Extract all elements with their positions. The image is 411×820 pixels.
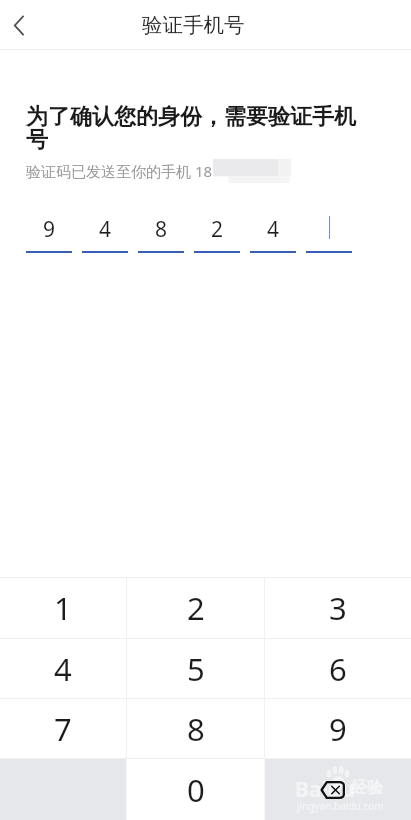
staticText: 验证手机号 [142,12,245,38]
staticText: Baidu [295,775,355,804]
staticText: 5 [187,648,205,690]
staticText: 为了确认您的身份，需要验证手机号 [26,103,368,154]
staticText: 验证码已发送至你的手机 18 [26,161,213,181]
staticText: 7 [54,708,72,750]
button[interactable]: Verification code digit [26,215,72,253]
button[interactable]: Verification code digit [194,215,240,253]
staticText: 4 [54,648,72,690]
staticText: 2 [211,215,224,238]
button[interactable]: 3 [265,578,411,638]
button[interactable]: Verification code digit [250,215,296,253]
staticText: 6 [329,648,347,690]
staticText: 9 [329,708,347,750]
staticText: 0 [187,769,205,811]
button[interactable]: Verification code digit [82,215,128,253]
staticText: 1 [54,587,72,629]
staticText: 4 [267,215,280,238]
button[interactable]: 6 [265,639,411,698]
button[interactable]: 2 [127,578,264,638]
button[interactable]: Back [0,0,40,50]
staticText: 3 [329,587,347,629]
button[interactable]: Verification code digit [138,215,184,253]
button[interactable]: 9 [265,699,411,758]
staticText: 经验 [351,778,383,798]
staticText: 8 [155,215,168,238]
staticText: 4 [99,215,112,238]
staticText: 9 [43,215,56,238]
button[interactable]: 5 [127,639,264,698]
staticText: 2 [187,587,205,629]
button[interactable]: Backspace [265,759,411,820]
button[interactable]: 1 [0,578,126,638]
button[interactable]: 7 [0,699,126,758]
button[interactable]: Verification code digit [306,215,352,253]
button[interactable]: 4 [0,639,126,698]
button[interactable]: 8 [127,699,264,758]
staticText: jingyan.baidu.com [297,799,384,813]
staticText: 8 [187,708,205,750]
button[interactable]: 0 [127,759,264,820]
